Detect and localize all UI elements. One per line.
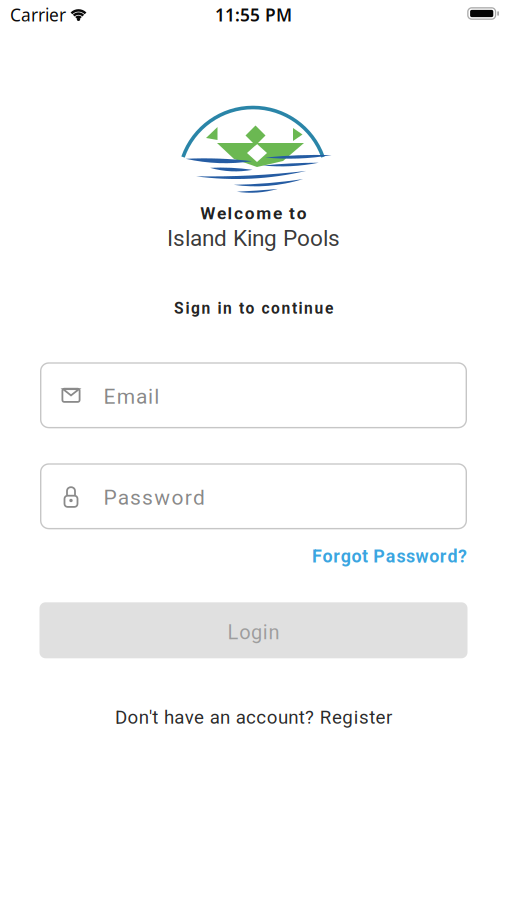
staticText: t (292, 299, 297, 317)
staticText: i (263, 621, 268, 644)
staticText: t (239, 299, 244, 317)
staticText: e (273, 203, 282, 223)
staticText: l (154, 384, 159, 409)
staticText: n (220, 706, 230, 728)
staticText: P (103, 485, 116, 510)
staticText: l (227, 203, 232, 223)
staticText: n (201, 299, 210, 317)
staticText: a (386, 546, 396, 567)
staticText: R (320, 706, 332, 728)
staticText: e (332, 706, 342, 728)
staticText: L (227, 621, 238, 644)
staticText: a (174, 706, 184, 728)
staticText: g (191, 299, 200, 317)
staticText: n (139, 706, 149, 728)
staticText: i (354, 706, 359, 728)
staticText: o (429, 546, 439, 567)
staticText: n (304, 299, 313, 317)
staticText: n (268, 621, 279, 644)
staticText: s (359, 706, 369, 728)
staticText: s (130, 485, 141, 510)
staticText: o (323, 546, 333, 567)
staticText: u (314, 299, 323, 317)
staticText: a (118, 485, 129, 510)
button[interactable]: L (39, 602, 467, 658)
staticText: r (386, 706, 392, 728)
staticText: ? (305, 706, 314, 728)
staticText: F (312, 546, 322, 567)
staticText: o (171, 485, 183, 510)
button[interactable]: F (312, 546, 467, 567)
staticText: m (117, 384, 135, 409)
staticText: c (256, 706, 266, 728)
staticText: e (194, 706, 204, 728)
staticText: a (236, 706, 246, 728)
staticText: o (239, 621, 250, 644)
staticText: e (325, 299, 333, 317)
staticText: D (115, 706, 127, 728)
staticText: P (373, 546, 385, 567)
staticText: Carrier (10, 3, 66, 26)
staticText: r (333, 546, 340, 567)
staticText: w (416, 546, 429, 567)
staticText: a (136, 384, 147, 409)
staticText: o (127, 706, 138, 728)
button[interactable]: P (40, 463, 467, 529)
staticText: ? (458, 546, 467, 567)
staticText: i (185, 299, 189, 317)
staticText: o (267, 706, 278, 728)
staticText: u (278, 706, 288, 728)
button[interactable]: D (115, 705, 392, 729)
staticText: E (103, 384, 115, 409)
staticText: o (245, 203, 255, 223)
staticText: c (261, 299, 269, 317)
staticText: s (396, 546, 405, 567)
staticText: s (406, 546, 415, 567)
staticText: i (298, 299, 302, 317)
staticText: g (251, 621, 262, 644)
staticText: d (447, 546, 457, 567)
staticText: r (185, 485, 192, 510)
staticText: t (362, 546, 368, 567)
staticText: v (185, 706, 194, 728)
staticText: S (174, 299, 184, 317)
staticText: o (351, 546, 361, 567)
staticText: n (223, 299, 232, 317)
staticText: n (281, 299, 290, 317)
staticText: i (217, 299, 221, 317)
staticText: 11:55 PM (215, 3, 292, 26)
staticText: r (440, 546, 447, 567)
staticText: a (210, 706, 220, 728)
staticText: i (148, 384, 153, 409)
staticText: g (341, 546, 351, 567)
staticText: e (217, 203, 226, 223)
button[interactable]: E (40, 362, 467, 428)
staticText: t (152, 706, 158, 728)
staticText: c (246, 706, 256, 728)
staticText: d (193, 485, 205, 510)
staticText: W (200, 203, 215, 223)
staticText: Island King Pools (167, 225, 340, 252)
staticText: o (245, 299, 254, 317)
staticText: n (288, 706, 298, 728)
staticText: c (234, 203, 243, 223)
staticText: h (164, 706, 174, 728)
staticText: t (289, 203, 295, 223)
staticText: e (376, 706, 386, 728)
staticText: t (299, 706, 305, 728)
staticText: m (256, 203, 271, 223)
staticText: s (142, 485, 153, 510)
staticText: ' (149, 706, 152, 728)
staticText: t (369, 706, 375, 728)
staticText: g (342, 706, 353, 728)
staticText: o (297, 203, 307, 223)
